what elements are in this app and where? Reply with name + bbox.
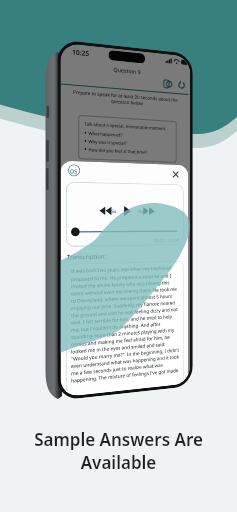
staticText: Talk about a special, memorable moment. bbox=[84, 120, 167, 131]
staticText: 00:02 / 01:05 bbox=[154, 237, 179, 244]
staticText: 5s bbox=[111, 208, 116, 214]
staticText: Why was it special? bbox=[88, 138, 127, 146]
staticText: Prepare to speak for at least 20 seconds… bbox=[67, 88, 183, 109]
button[interactable]: Restart bbox=[177, 79, 186, 91]
staticText: How did you feel at that time? bbox=[88, 146, 148, 155]
staticText: It was back two years ago when my boyfri… bbox=[71, 264, 179, 384]
staticText: DS bbox=[70, 167, 78, 175]
button[interactable]: Play bbox=[124, 206, 131, 216]
button[interactable]: Recording timer bbox=[163, 78, 173, 90]
button[interactable]: Rewind 5 seconds bbox=[99, 207, 116, 215]
staticText: Question 9 bbox=[113, 66, 141, 75]
staticText: 10:25 bbox=[72, 47, 89, 58]
button[interactable]: Close bbox=[170, 168, 181, 180]
staticText: 5s bbox=[138, 208, 143, 214]
button[interactable]: Forward 5 seconds bbox=[138, 207, 154, 215]
staticText: What happened? bbox=[88, 130, 123, 138]
staticText: Sample Answers Are Available bbox=[34, 428, 203, 474]
staticText: Transcription: bbox=[67, 252, 106, 261]
